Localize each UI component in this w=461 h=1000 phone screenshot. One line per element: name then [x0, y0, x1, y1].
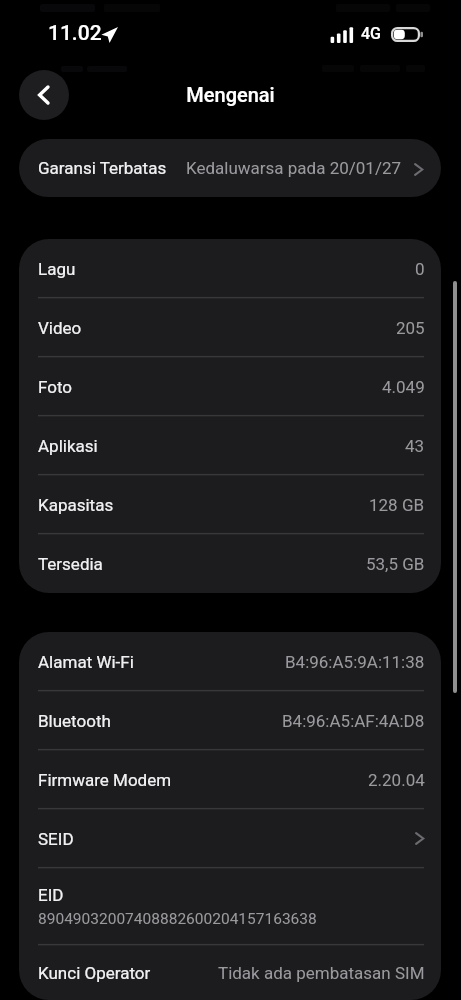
staticText: Bluetooth — [38, 711, 111, 731]
staticText: Lagu — [38, 259, 76, 279]
staticText: 53,5 GB — [366, 554, 425, 574]
button[interactable]: Video — [19, 298, 441, 357]
staticText: Garansi Terbatas — [38, 158, 167, 178]
staticText: 2.20.04 — [368, 770, 425, 790]
staticText: 11.02 — [48, 21, 102, 46]
staticText: 205 — [396, 318, 425, 338]
button[interactable]: Aplikasi — [19, 416, 441, 475]
staticText: 89049032007408882600204157163638 — [38, 910, 317, 928]
staticText: Tersedia — [38, 554, 103, 574]
button[interactable]: Lagu — [19, 239, 441, 298]
staticText: B4:96:A5:9A:11:38 — [285, 652, 425, 672]
staticText: Kapasitas — [38, 495, 114, 515]
staticText: SEID — [38, 829, 74, 849]
staticText: 43 — [405, 436, 425, 456]
staticText: 0 — [415, 259, 425, 279]
button[interactable]: Kapasitas — [19, 475, 441, 534]
staticText: 4.049 — [382, 377, 425, 397]
staticText: 4G — [361, 24, 381, 43]
staticText: 128 GB — [369, 495, 425, 515]
staticText: Firmware Modem — [38, 770, 172, 790]
staticText: Kunci Operator — [38, 963, 151, 983]
button[interactable]: Alamat Wi-Fi — [19, 632, 441, 691]
button[interactable]: Foto — [19, 357, 441, 416]
staticText: Aplikasi — [38, 436, 98, 456]
button[interactable]: SEID — [19, 809, 441, 868]
staticText: Foto — [38, 377, 73, 397]
staticText: B4:96:A5:AF:4A:D8 — [282, 711, 425, 731]
staticText: EID — [38, 885, 64, 905]
button[interactable]: Garansi Terbatas — [19, 139, 441, 197]
button[interactable]: Tersedia — [19, 534, 441, 593]
button[interactable]: EID — [19, 868, 441, 945]
button[interactable]: Kunci Operator — [19, 945, 441, 1000]
button[interactable]: Bluetooth — [19, 691, 441, 750]
button[interactable]: Back — [19, 70, 69, 120]
button[interactable]: Firmware Modem — [19, 750, 441, 809]
staticText: Kedaluwarsa pada 20/01/27 — [186, 158, 402, 178]
staticText: Tidak ada pembatasan SIM — [218, 963, 425, 983]
staticText: Video — [38, 318, 82, 338]
staticText: Alamat Wi-Fi — [38, 652, 134, 672]
staticText: Mengenai — [0, 83, 461, 106]
